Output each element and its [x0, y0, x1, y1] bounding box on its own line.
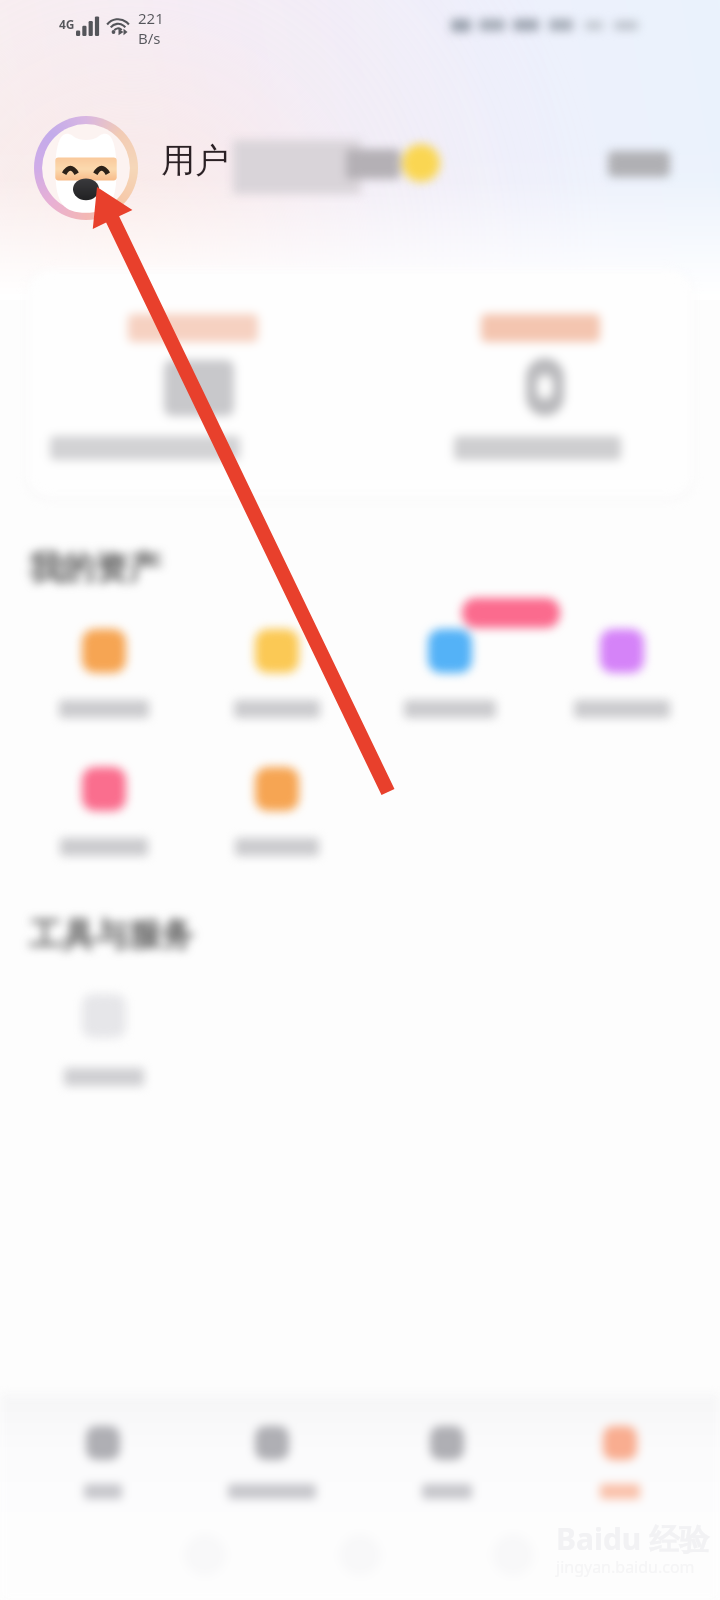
- button[interactable]: [28, 270, 692, 498]
- button[interactable]: [360, 270, 692, 498]
- staticText: 工具与服务: [29, 914, 194, 956]
- button[interactable]: Nav tab 3: [560, 1394, 680, 1512]
- staticText: 4G: [59, 16, 75, 32]
- button[interactable]: [28, 270, 360, 498]
- button[interactable]: Asset item: [201, 605, 353, 729]
- staticText: 221: [138, 8, 164, 28]
- button[interactable]: Profile avatar: [34, 116, 138, 220]
- staticText: 用户: [161, 139, 229, 182]
- button[interactable]: Asset item: [28, 743, 180, 867]
- button[interactable]: Asset item: [28, 605, 180, 729]
- staticText: 我的资产: [29, 547, 161, 589]
- button[interactable]: Asset item: [546, 605, 698, 729]
- button[interactable]: Nav tab 2: [387, 1394, 507, 1512]
- button[interactable]: Account settings: [596, 138, 682, 188]
- button[interactable]: Nav tab 0: [43, 1394, 163, 1512]
- staticText: B/s: [138, 28, 161, 46]
- staticText: Baidu 经验: [556, 1518, 710, 1559]
- button[interactable]: Tool item: [28, 972, 180, 1112]
- button[interactable]: Nav tab 1: [212, 1394, 332, 1512]
- button[interactable]: Asset item: [374, 605, 526, 729]
- button[interactable]: Asset item: [201, 743, 353, 867]
